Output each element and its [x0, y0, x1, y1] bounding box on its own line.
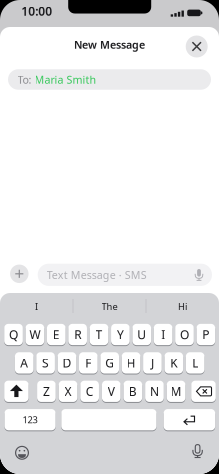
staticText: Hi	[178, 300, 187, 313]
staticText: T	[95, 326, 102, 342]
staticText: V	[108, 383, 115, 399]
staticText: R	[74, 326, 81, 342]
staticText: I	[35, 300, 38, 313]
staticText: Text Message · SMS	[47, 268, 147, 282]
button[interactable]: K	[164, 352, 183, 373]
staticText: D	[62, 355, 71, 371]
staticText: New Message	[74, 37, 145, 52]
staticText: 10:00	[21, 3, 52, 19]
staticText: I	[161, 326, 165, 342]
staticText: U	[137, 326, 146, 342]
button[interactable]: V	[102, 381, 121, 402]
button[interactable]: Q	[4, 324, 23, 345]
staticText: To:	[17, 72, 31, 87]
button[interactable]: 123	[4, 409, 56, 430]
staticText: P	[202, 326, 209, 342]
button[interactable]: A	[15, 352, 34, 373]
button[interactable]: L	[186, 352, 205, 373]
button[interactable]: B	[123, 381, 142, 402]
button[interactable]: Y	[111, 324, 130, 345]
staticText: J	[151, 355, 154, 371]
button[interactable]: E	[47, 324, 66, 345]
button[interactable]	[164, 409, 215, 430]
staticText: Z	[43, 383, 50, 399]
staticText: G	[105, 355, 114, 371]
button[interactable]: Hi	[146, 295, 219, 317]
staticText: H	[127, 355, 136, 371]
staticText: The	[101, 300, 117, 313]
staticText: O	[180, 326, 189, 342]
button[interactable]: W	[26, 324, 44, 345]
button[interactable]: D	[58, 352, 76, 373]
button[interactable]	[10, 265, 29, 283]
button[interactable]: X	[59, 381, 77, 402]
button[interactable]: The	[73, 295, 146, 317]
staticText: Y	[117, 326, 124, 342]
staticText: Maria Smith	[34, 72, 96, 87]
button[interactable]: I	[0, 295, 73, 317]
button[interactable]: F	[79, 352, 98, 373]
staticText: Q	[9, 326, 18, 342]
staticText: N	[150, 383, 159, 399]
staticText: F	[85, 355, 91, 371]
staticText: S	[42, 355, 49, 371]
button[interactable]: T	[90, 324, 108, 345]
button[interactable]	[61, 409, 156, 430]
button[interactable]: R	[68, 324, 87, 345]
button[interactable]	[15, 446, 29, 460]
button[interactable]: M	[167, 381, 185, 402]
button[interactable]: Text Message · SMS	[38, 264, 212, 286]
staticText: C	[86, 383, 94, 399]
button[interactable]: To:	[8, 69, 211, 90]
button[interactable]: U	[132, 324, 151, 345]
staticText: A	[20, 355, 28, 371]
button[interactable]: O	[175, 324, 194, 345]
staticText: X	[64, 383, 71, 399]
staticText: E	[53, 326, 60, 342]
button[interactable]: C	[80, 381, 99, 402]
button[interactable]	[4, 381, 29, 402]
button[interactable]: G	[100, 352, 119, 373]
staticText: M	[171, 383, 182, 399]
button[interactable]: Z	[37, 381, 56, 402]
staticText: 123	[23, 413, 38, 426]
button[interactable]: I	[154, 324, 172, 345]
button[interactable]: J	[143, 352, 162, 373]
button[interactable]: P	[196, 324, 215, 345]
button[interactable]: S	[36, 352, 55, 373]
staticText: W	[29, 326, 40, 342]
staticText: K	[170, 355, 177, 371]
staticText: B	[129, 383, 137, 399]
button[interactable]	[186, 35, 208, 57]
button[interactable]	[190, 442, 205, 459]
staticText: L	[192, 355, 198, 371]
button[interactable]: N	[145, 381, 164, 402]
button[interactable]: H	[122, 352, 140, 373]
button[interactable]	[191, 381, 216, 402]
